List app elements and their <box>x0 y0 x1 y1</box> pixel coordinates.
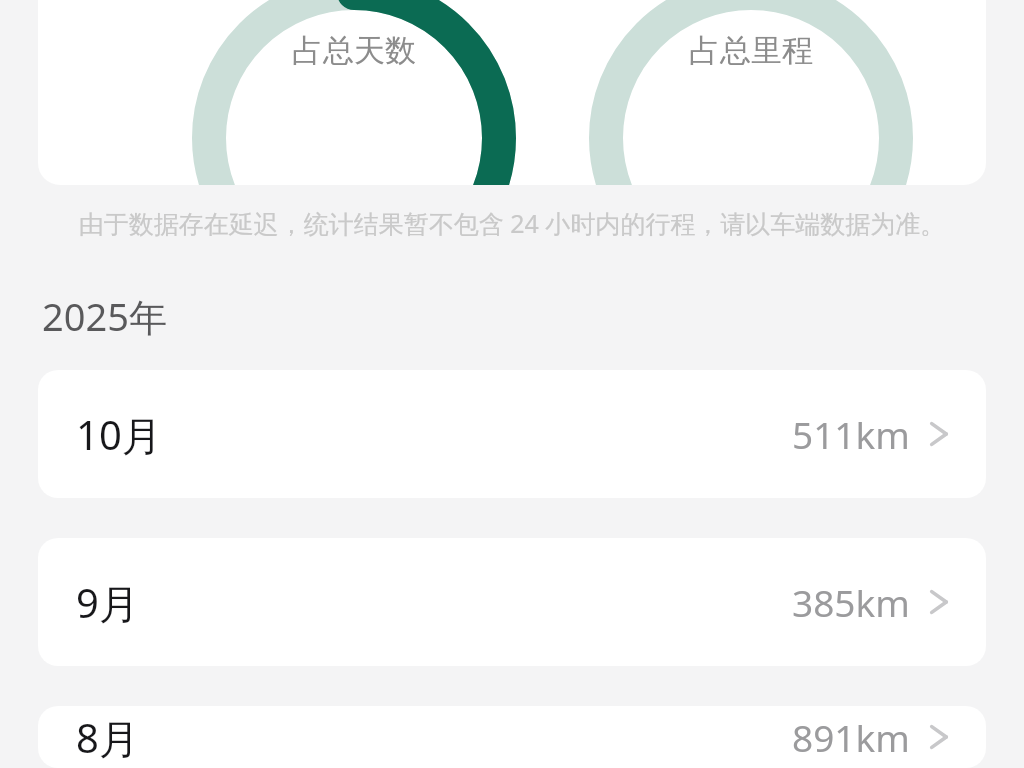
staticText: 2025年 <box>42 290 167 342</box>
button[interactable]: 9月 <box>38 538 986 666</box>
staticText: 10月 <box>76 407 162 462</box>
other: 展开 <box>926 414 952 454</box>
staticText: 9月 <box>76 575 139 630</box>
staticText: 占总里程 <box>689 31 813 70</box>
button[interactable]: 10月 <box>38 370 986 498</box>
other: 展开 <box>926 582 952 622</box>
staticText: 由于数据存在延迟，统计结果暂不包含 24 小时内的行程，请以车端数据为准。 <box>30 206 994 240</box>
staticText: 891km <box>792 712 910 762</box>
staticText: 占总天数 <box>292 31 416 70</box>
staticText: 8月 <box>76 710 139 765</box>
button[interactable]: 8月 <box>38 706 986 768</box>
staticText: 511km <box>792 409 910 459</box>
staticText: 385km <box>792 577 910 627</box>
other: 展开 <box>926 717 952 757</box>
